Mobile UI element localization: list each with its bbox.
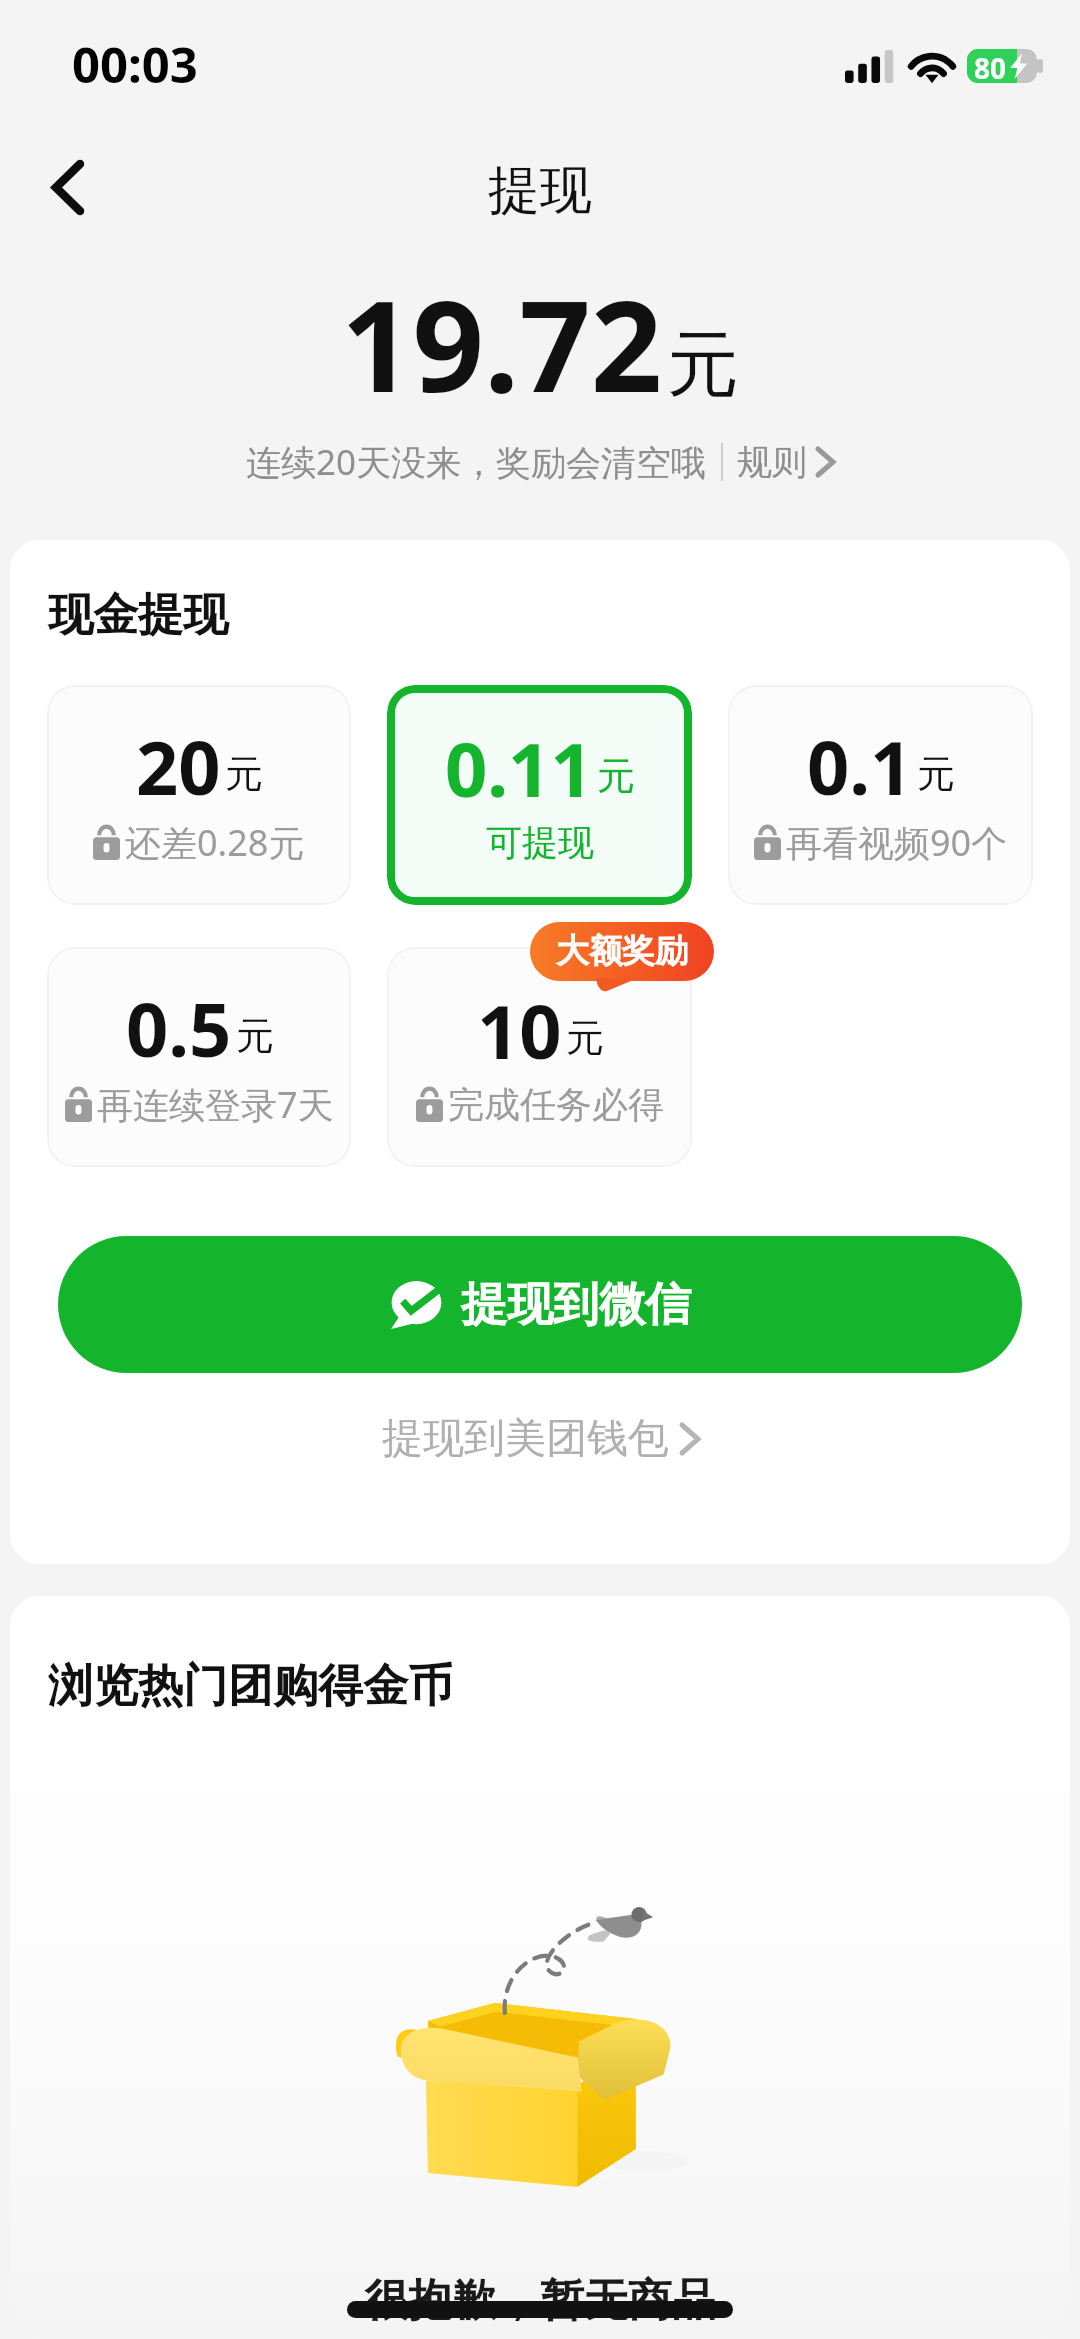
- staticText: 元: [667, 320, 739, 411]
- staticText: 0.1: [807, 716, 913, 817]
- staticText: 80: [974, 49, 1007, 82]
- staticText: 19.72: [341, 258, 663, 428]
- staticText: 00:03: [72, 31, 198, 98]
- staticText: 0.5: [126, 978, 232, 1079]
- staticText: 提现到美团钱包: [382, 1413, 669, 1465]
- staticText: 10: [477, 980, 562, 1081]
- staticText: 提现到微信: [461, 1276, 691, 1334]
- button[interactable]: 提现到微信: [58, 1236, 1022, 1373]
- staticText: 0.11: [445, 718, 593, 819]
- button[interactable]: 0.1: [728, 685, 1033, 905]
- staticText: 元: [566, 1014, 604, 1062]
- staticText: 元: [917, 750, 955, 798]
- staticText: 元: [236, 1012, 274, 1060]
- staticText: 元: [225, 750, 263, 798]
- button[interactable]: 提现到美团钱包: [10, 1413, 1070, 1465]
- staticText: 20: [136, 716, 221, 817]
- staticText: 再看视频90个: [786, 818, 1008, 867]
- button[interactable]: 规则: [737, 440, 834, 484]
- button[interactable]: Back: [20, 139, 116, 235]
- staticText: 完成任务必得: [448, 1082, 664, 1127]
- button[interactable]: 0.5: [47, 947, 351, 1167]
- staticText: 规则: [737, 440, 807, 484]
- staticText: 连续20天没来，奖励会清空哦: [246, 438, 707, 486]
- staticText: 浏览热门团购得金币: [48, 1658, 453, 1715]
- staticText: 提现: [488, 158, 592, 224]
- button[interactable]: 0.11: [387, 685, 692, 905]
- staticText: 可提现: [486, 820, 594, 865]
- staticText: 还差0.28元: [125, 818, 305, 867]
- staticText: 现金提现: [48, 587, 228, 644]
- button[interactable]: 10: [387, 947, 692, 1167]
- staticText: 元: [597, 752, 635, 800]
- staticText: 大额奖励: [556, 930, 688, 972]
- staticText: 很抱歉，暂无商品: [364, 2273, 716, 2328]
- button[interactable]: 20: [47, 685, 351, 905]
- staticText: 再连续登录7天: [97, 1080, 334, 1129]
